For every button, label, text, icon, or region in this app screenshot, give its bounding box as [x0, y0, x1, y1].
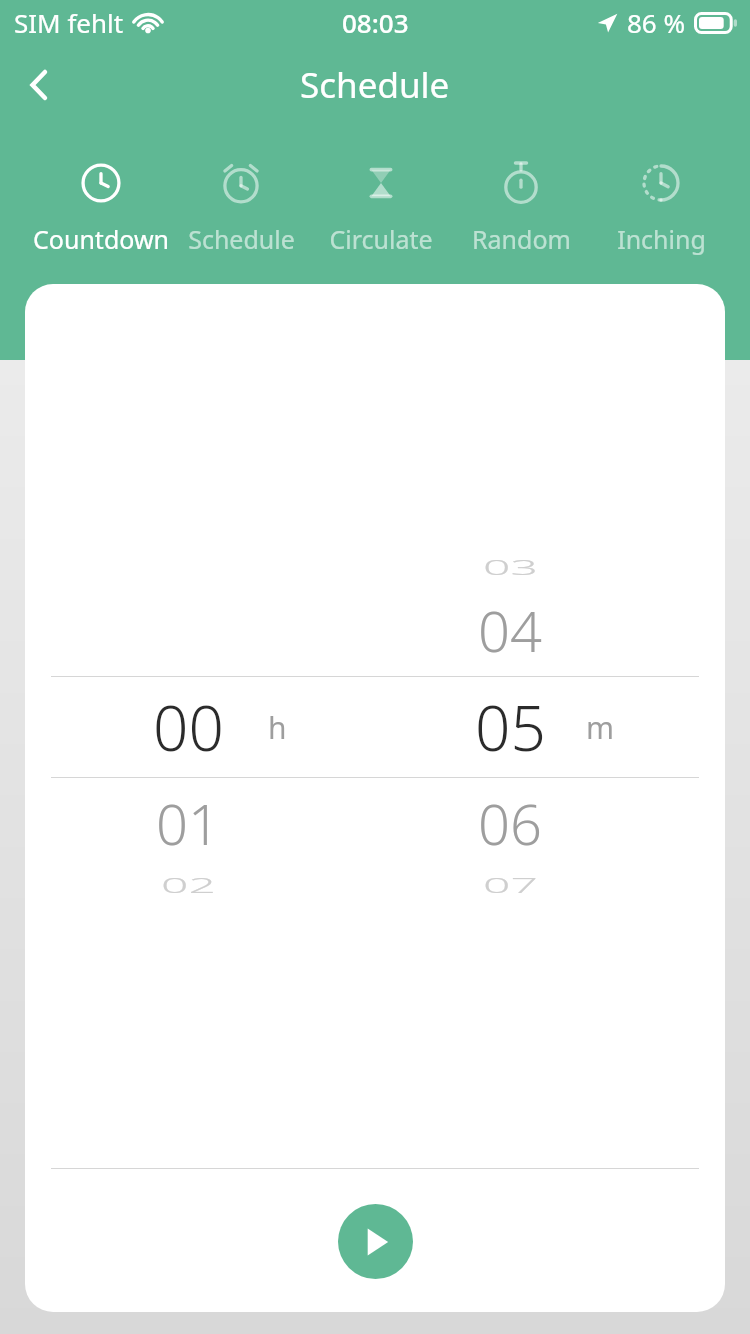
button[interactable]: Back: [12, 57, 70, 113]
button[interactable]: Inching: [591, 150, 731, 260]
button[interactable]: 00: [88, 677, 288, 777]
button[interactable]: 06: [410, 773, 610, 873]
button[interactable]: Circulate: [311, 150, 451, 260]
staticText: 86 %: [627, 5, 686, 40]
staticText: SIM fehlt: [14, 5, 124, 40]
staticText: 07: [483, 872, 538, 899]
staticText: Countdown: [33, 222, 169, 256]
staticText: 03: [483, 554, 538, 581]
button[interactable]: 01: [88, 773, 288, 873]
staticText: h: [268, 707, 287, 748]
staticText: m: [586, 707, 615, 748]
button[interactable]: 05: [410, 677, 610, 777]
staticText: 08:03: [342, 5, 409, 40]
staticText: 00: [153, 685, 224, 769]
staticText: 02: [161, 872, 216, 899]
staticText: 01: [156, 785, 220, 861]
staticText: Inching: [617, 222, 706, 256]
staticText: 05: [475, 685, 546, 769]
button[interactable]: 02: [88, 864, 288, 906]
staticText: Circulate: [329, 222, 433, 256]
button[interactable]: Schedule: [171, 150, 311, 260]
button[interactable]: Random: [451, 150, 591, 260]
button[interactable]: Countdown: [31, 150, 171, 260]
staticText: Random: [472, 222, 571, 256]
button[interactable]: 03: [410, 546, 610, 588]
staticText: Schedule: [300, 61, 450, 109]
staticText: Schedule: [188, 222, 295, 256]
staticText: 06: [478, 785, 542, 861]
button[interactable]: Start countdown: [338, 1204, 413, 1279]
button[interactable]: 04: [410, 580, 610, 680]
staticText: 04: [478, 592, 542, 668]
button[interactable]: 07: [410, 864, 610, 906]
